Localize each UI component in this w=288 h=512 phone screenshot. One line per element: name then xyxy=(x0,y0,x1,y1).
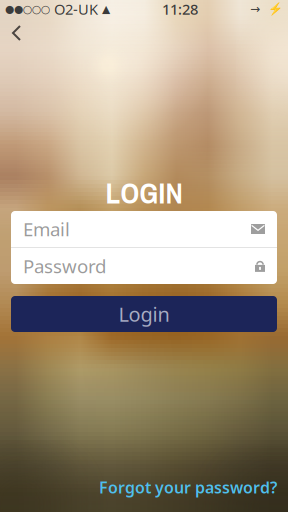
staticText: Password xyxy=(23,254,106,278)
button[interactable]: Forgot your password? xyxy=(99,477,277,498)
staticText: 11:28 xyxy=(162,0,198,19)
staticText: Email xyxy=(23,217,70,241)
staticText: → ⚡ xyxy=(250,2,283,16)
staticText: ●●○○○ xyxy=(5,3,50,15)
staticText: ▲ xyxy=(102,3,110,15)
button[interactable]: Back xyxy=(0,18,40,48)
staticText: Login xyxy=(118,301,169,327)
staticText: Forgot your password? xyxy=(99,477,277,498)
staticText: O2-UK xyxy=(54,0,98,19)
staticText: LOGIN xyxy=(105,173,182,213)
button[interactable]: Login xyxy=(11,296,277,332)
